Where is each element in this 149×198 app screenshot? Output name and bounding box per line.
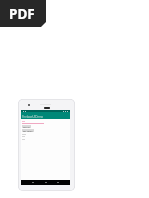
staticText: GET TOKEN	[23, 130, 33, 132]
button[interactable]: GET TOKEN	[22, 129, 34, 132]
button[interactable]: FirebaseUIDemo	[21, 112, 70, 119]
staticText: FirebaseUIDemo	[22, 115, 44, 119]
staticText: PDF	[9, 5, 35, 23]
staticText: SIGN IN	[23, 126, 30, 128]
button[interactable]: PDF document	[0, 0, 46, 27]
button[interactable]: SIGN IN	[22, 125, 31, 128]
button[interactable]: App screenshot	[18, 99, 75, 191]
